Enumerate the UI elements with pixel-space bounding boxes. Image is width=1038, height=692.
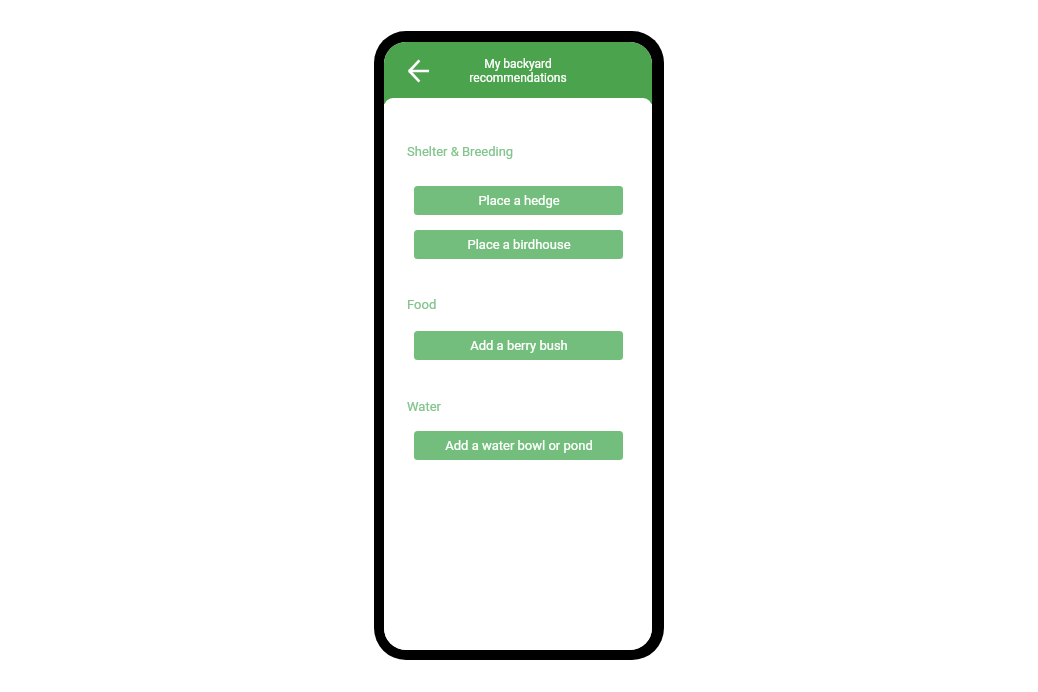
button[interactable]: Place a birdhouse — [414, 230, 623, 259]
staticText: Add a water bowl or pond — [445, 438, 593, 453]
staticText: Place a hedge — [478, 193, 560, 208]
staticText: Food — [407, 297, 437, 312]
button[interactable]: Add a berry bush — [414, 331, 623, 360]
button[interactable]: Navigate back — [408, 59, 432, 83]
button[interactable]: Add a water bowl or pond — [414, 431, 623, 460]
staticText: Add a berry bush — [470, 338, 568, 353]
staticText: Water — [407, 399, 441, 414]
staticText: My backyard recommendations — [384, 57, 652, 85]
staticText: Shelter & Breeding — [407, 144, 514, 159]
staticText: Place a birdhouse — [467, 237, 571, 252]
button[interactable]: Place a hedge — [414, 186, 623, 215]
